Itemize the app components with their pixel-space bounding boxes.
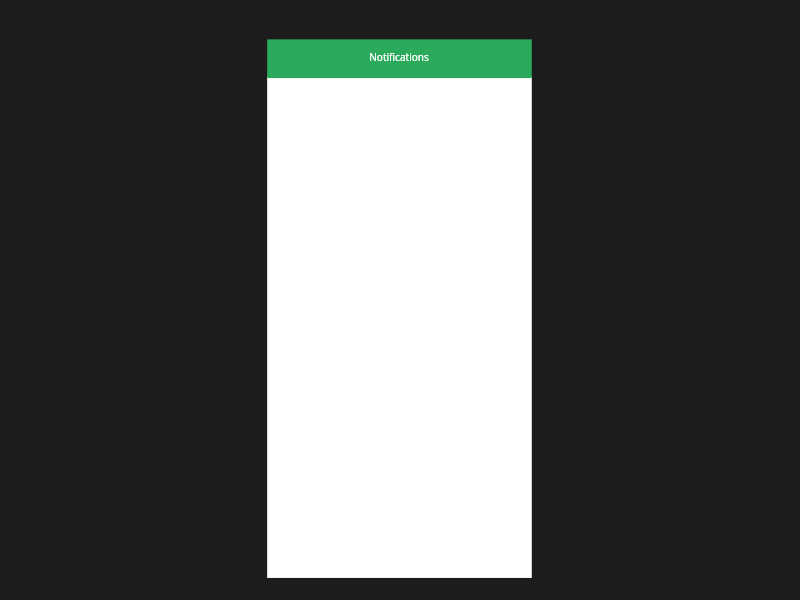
- staticText: Notifications: [369, 50, 429, 64]
- button[interactable]: Notifications app bar: [267, 39, 532, 78]
